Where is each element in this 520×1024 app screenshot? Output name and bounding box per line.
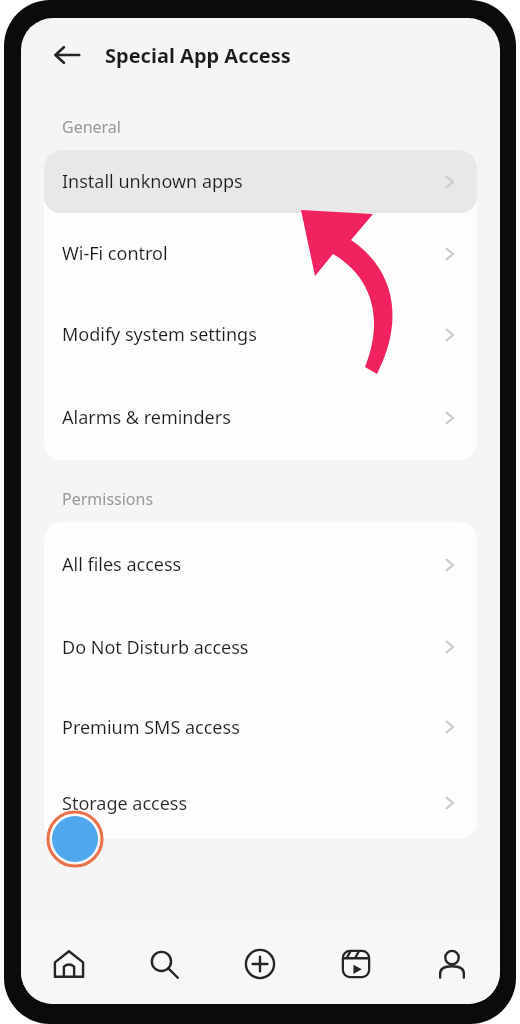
staticText: Alarms & reminders	[62, 405, 231, 430]
button[interactable]: Install unknown apps	[44, 150, 477, 213]
button[interactable]: Back	[47, 35, 87, 75]
button[interactable]: Do Not Disturb access	[44, 607, 477, 687]
staticText: Do Not Disturb access	[62, 635, 249, 660]
button[interactable]: Profile	[404, 920, 500, 1004]
button[interactable]: Premium SMS access	[44, 687, 477, 767]
button[interactable]: Wi-Fi control	[44, 213, 477, 294]
staticText: Storage access	[62, 791, 188, 816]
button[interactable]: Reels	[308, 920, 404, 1004]
button[interactable]: Alarms & reminders	[44, 375, 477, 460]
button[interactable]: Modify system settings	[44, 294, 477, 375]
staticText: All files access	[62, 552, 182, 577]
staticText: General	[62, 116, 121, 138]
button[interactable]: Search	[116, 920, 212, 1004]
staticText: Premium SMS access	[62, 715, 240, 740]
staticText: Special App Access	[105, 42, 291, 69]
staticText: Wi-Fi control	[62, 241, 168, 266]
staticText: Permissions	[62, 488, 154, 510]
staticText: Modify system settings	[62, 322, 257, 347]
button[interactable]: Storage access	[44, 767, 477, 839]
button[interactable]: All files access	[44, 522, 477, 607]
staticText: Install unknown apps	[62, 169, 243, 194]
button[interactable]: Home	[21, 920, 116, 1004]
button[interactable]: Create	[212, 920, 308, 1004]
